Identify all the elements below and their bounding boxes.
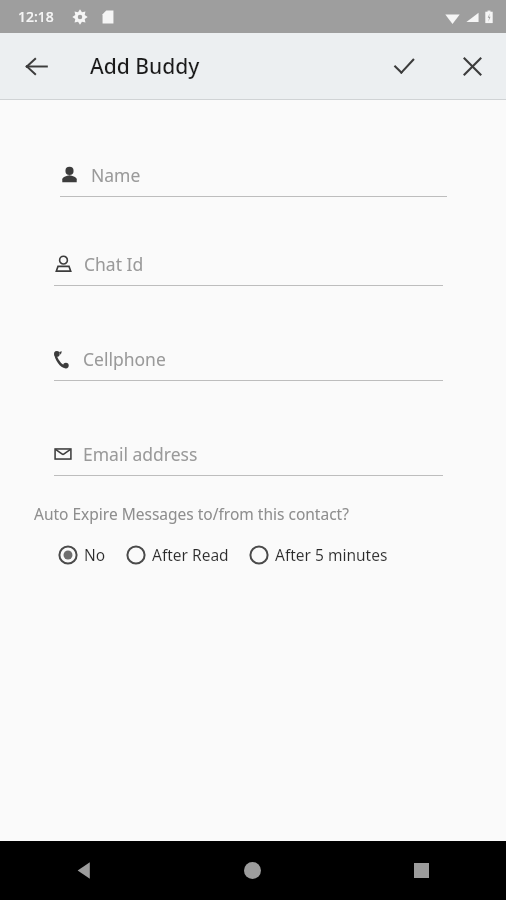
button[interactable]: Save xyxy=(380,42,428,90)
staticText: 12:18 xyxy=(18,7,54,26)
staticText: Add Buddy xyxy=(90,52,200,81)
staticText: Name xyxy=(91,163,141,187)
button[interactable]: Recent apps xyxy=(337,841,506,900)
button[interactable]: Email address xyxy=(54,442,443,476)
button[interactable]: Cancel xyxy=(448,42,496,90)
button[interactable]: Name xyxy=(60,163,447,197)
button[interactable]: No xyxy=(58,544,106,565)
button[interactable]: Home xyxy=(168,841,337,900)
staticText: Email address xyxy=(83,442,198,466)
button[interactable]: Cellphone xyxy=(54,347,443,381)
staticText: After Read xyxy=(152,544,229,565)
button[interactable]: Back xyxy=(12,42,60,90)
staticText: Cellphone xyxy=(83,347,166,371)
button[interactable]: Chat Id xyxy=(54,252,443,286)
button[interactable]: After 5 minutes xyxy=(249,544,388,565)
staticText: Chat Id xyxy=(84,252,144,276)
button[interactable]: After Read xyxy=(126,544,229,565)
button[interactable]: Back xyxy=(0,841,168,900)
staticText: Auto Expire Messages to/from this contac… xyxy=(34,503,349,524)
staticText: After 5 minutes xyxy=(275,544,388,565)
staticText: No xyxy=(84,544,106,565)
